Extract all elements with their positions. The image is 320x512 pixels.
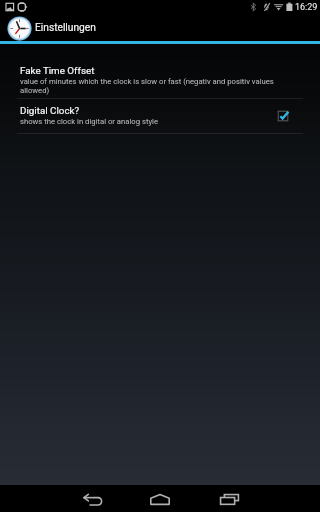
- staticText: value of minutes which the clock is slow…: [20, 77, 290, 95]
- staticText: Digital Clock?: [20, 105, 80, 116]
- button[interactable]: Digital Clock?: [0, 104, 320, 139]
- button[interactable]: Back: [70, 486, 114, 512]
- staticText: 16:29: [295, 2, 318, 13]
- staticText: Einstellungen: [35, 22, 96, 34]
- staticText: shows the clock in digital or analog sty…: [20, 117, 159, 126]
- button[interactable]: Digital Clock toggle: [276, 109, 290, 123]
- button[interactable]: Recent apps: [207, 486, 251, 512]
- staticText: Fake Time Offset: [20, 65, 95, 76]
- button[interactable]: Fake Time Offset: [0, 64, 320, 99]
- button[interactable]: Home: [138, 486, 182, 512]
